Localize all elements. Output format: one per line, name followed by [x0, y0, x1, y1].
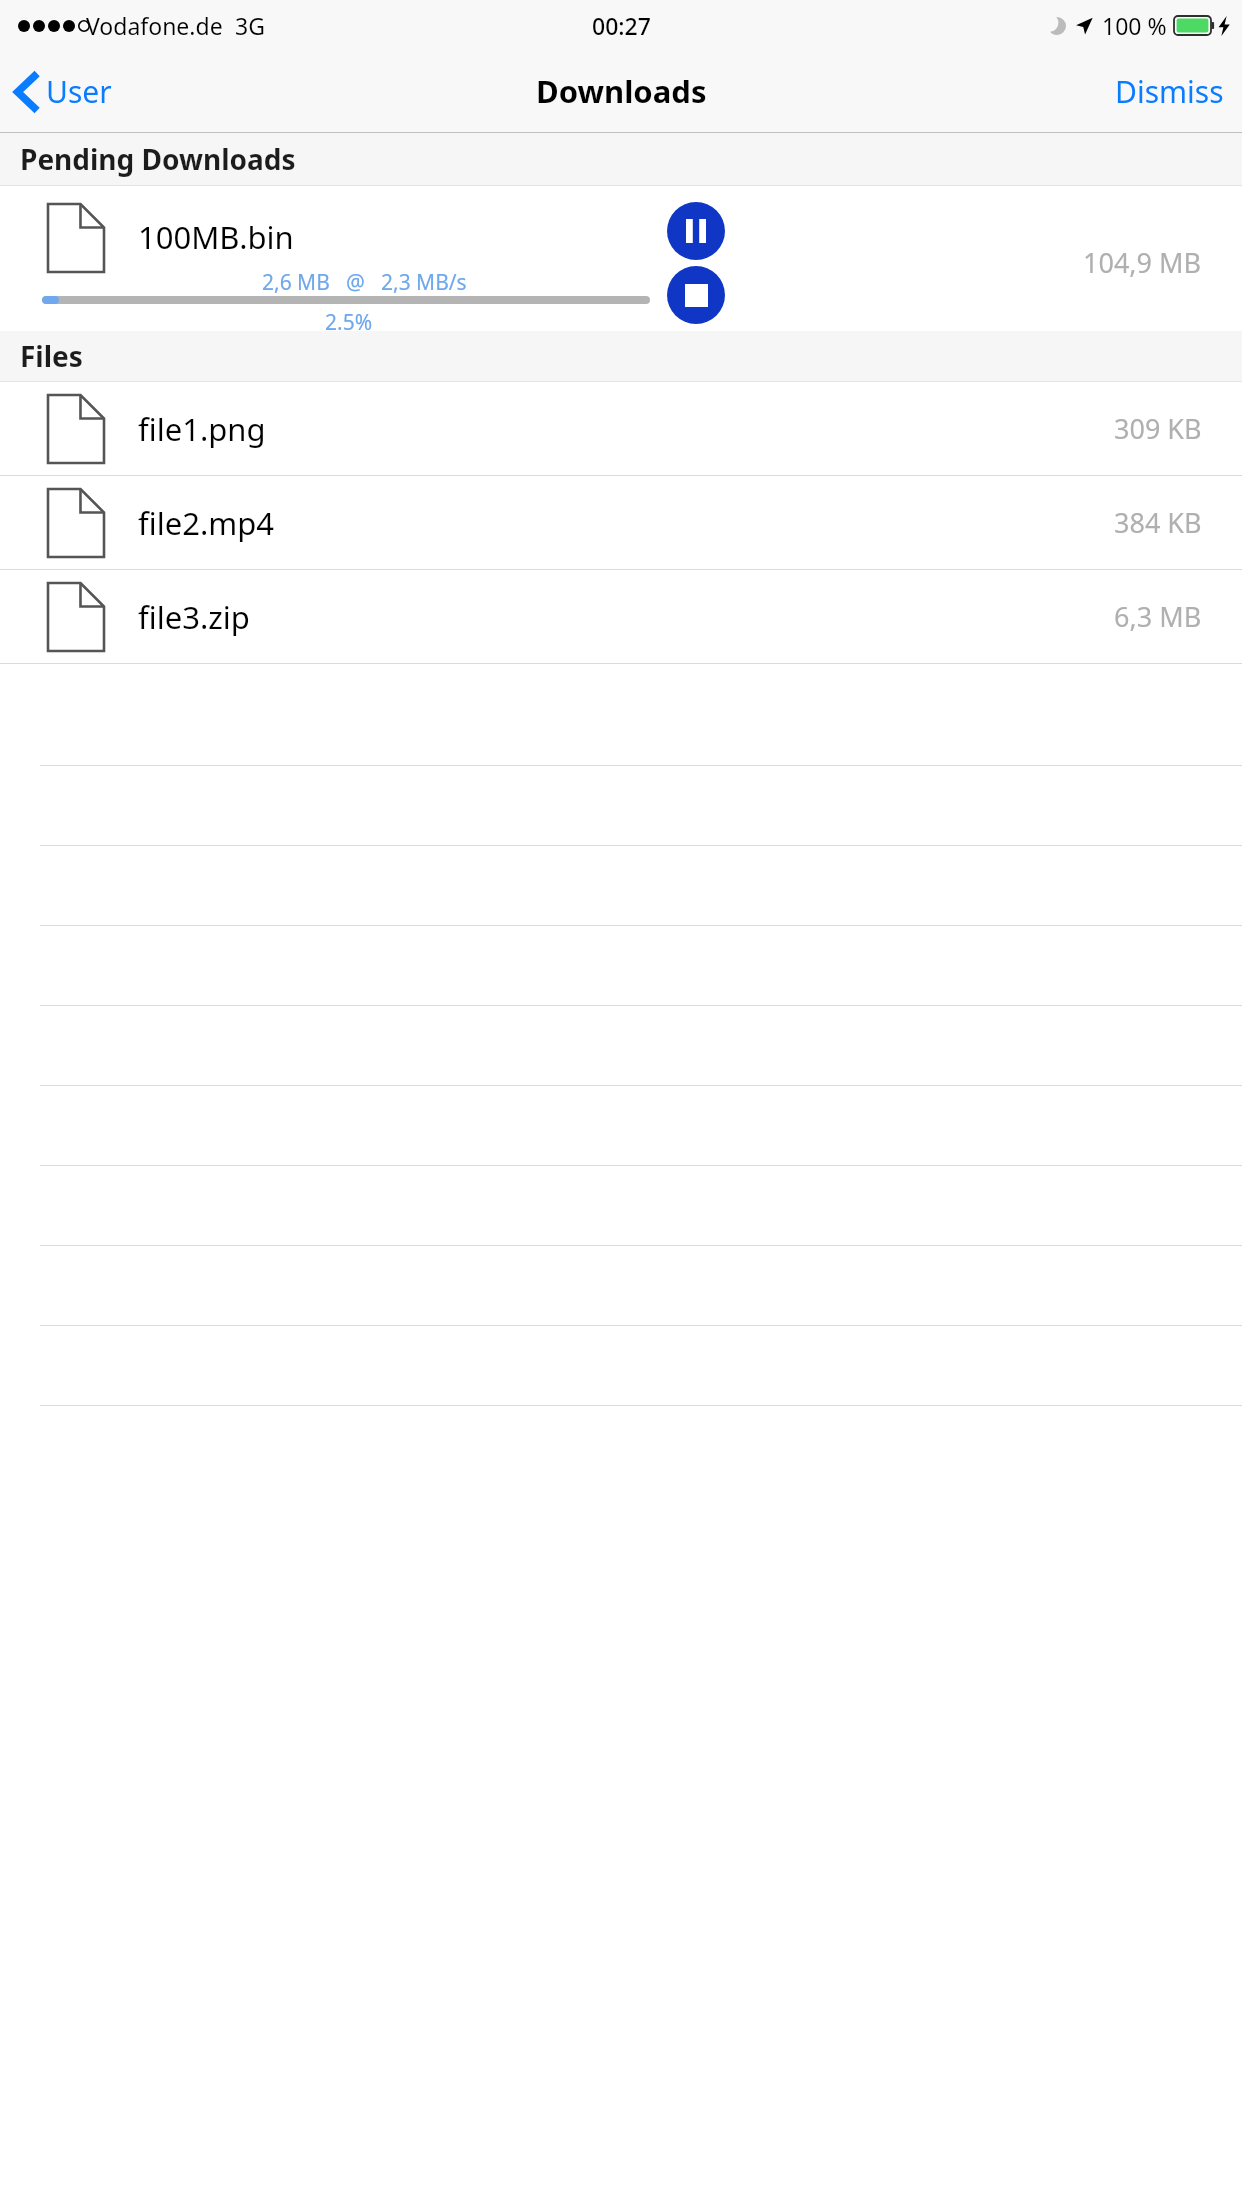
button[interactable]: file3.zip	[0, 570, 1242, 663]
button[interactable]: Stop download	[667, 266, 725, 324]
staticText: 104,9 MB	[1083, 244, 1202, 281]
staticText: Files	[20, 337, 83, 375]
staticText: Dismiss	[1115, 71, 1224, 112]
staticText: file1.png	[138, 408, 266, 450]
staticText: 3G	[235, 10, 265, 41]
button[interactable]: 100MB.bin	[0, 186, 1242, 331]
button[interactable]: file2.mp4	[0, 476, 1242, 569]
button[interactable]: Dismiss	[1097, 61, 1242, 122]
staticText: 00:27	[592, 10, 651, 41]
staticText: 2.5%	[325, 308, 373, 331]
staticText: 6,3 MB	[1114, 598, 1202, 635]
button[interactable]: Pause download	[667, 202, 725, 260]
staticText: Vodafone.de	[86, 10, 223, 41]
button[interactable]: file1.png	[0, 382, 1242, 475]
staticText: file2.mp4	[138, 502, 274, 544]
staticText: Downloads	[536, 70, 707, 112]
staticText: 100MB.bin	[138, 216, 294, 258]
staticText: 100 %	[1102, 10, 1167, 41]
staticText: 384 KB	[1114, 504, 1202, 541]
staticText: file3.zip	[138, 596, 250, 638]
staticText: Pending Downloads	[20, 140, 296, 178]
button[interactable]: User	[0, 63, 128, 120]
staticText: 309 KB	[1114, 410, 1202, 447]
staticText: 2,6 MB	[262, 268, 330, 297]
staticText: @	[346, 268, 365, 297]
staticText: User	[46, 71, 112, 112]
staticText: 2,3 MB/s	[381, 268, 467, 297]
